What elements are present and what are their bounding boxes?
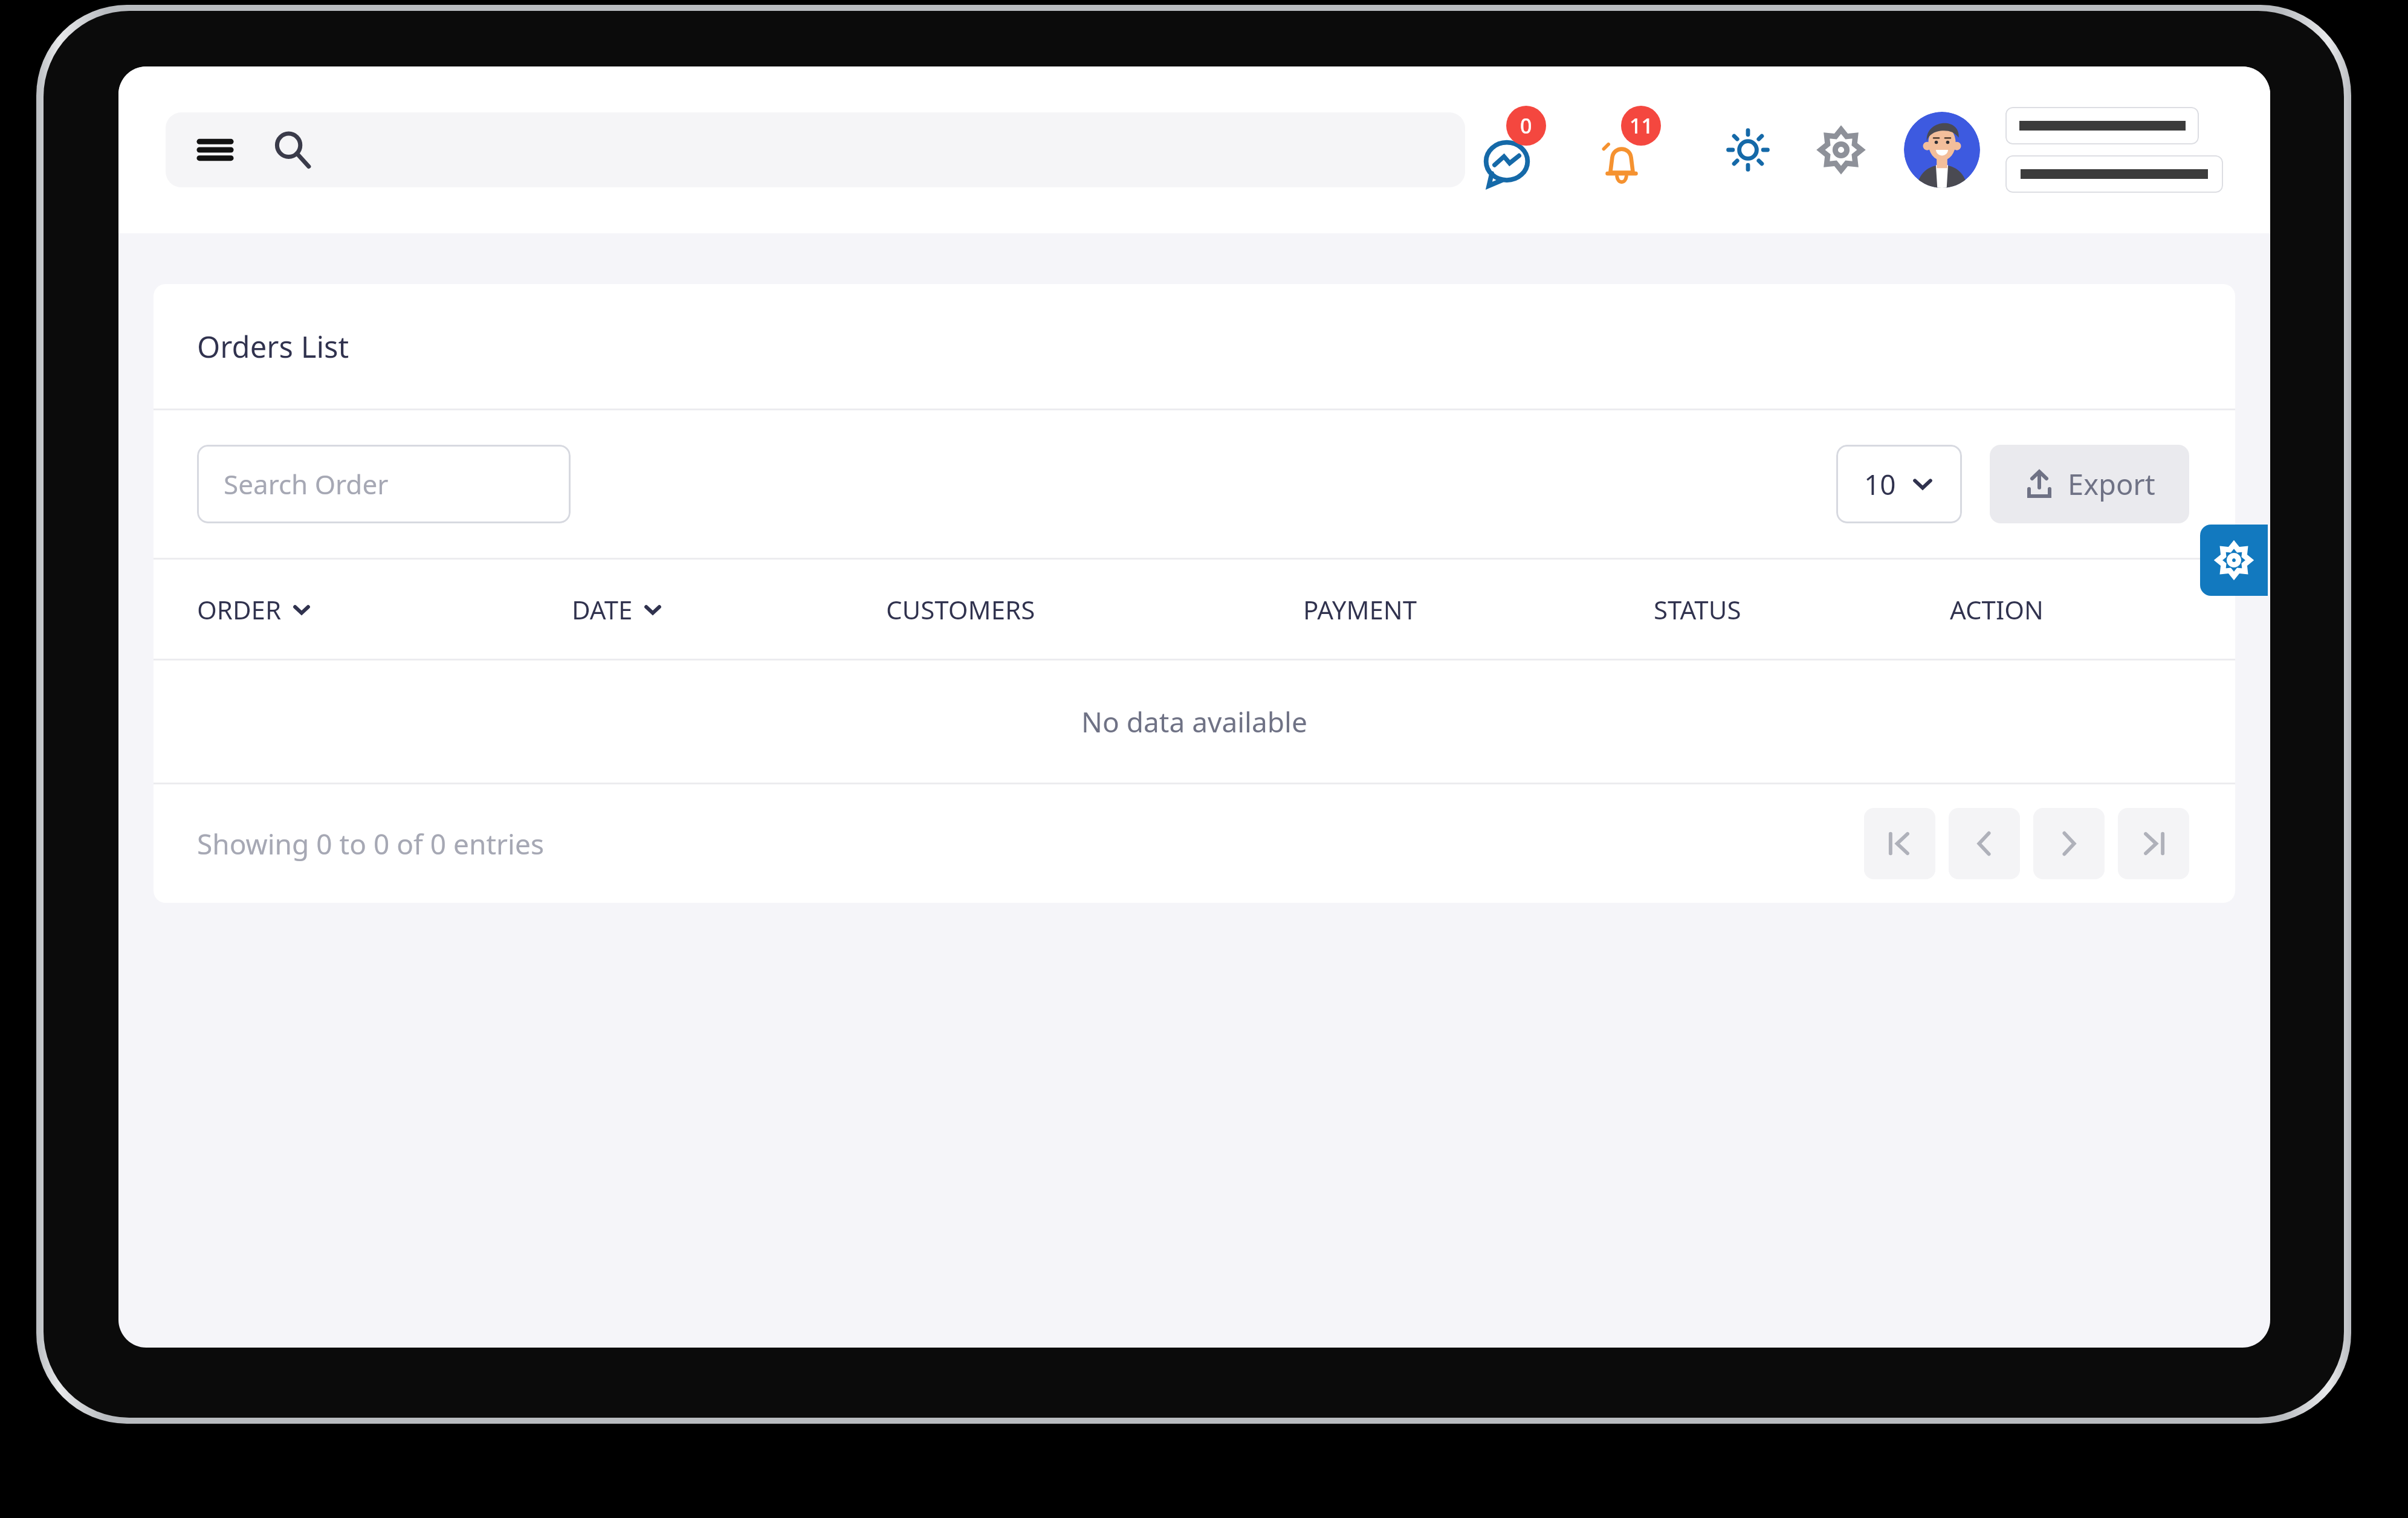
button[interactable]: Search Order — [197, 445, 571, 523]
staticText: DATE — [572, 592, 633, 627]
button[interactable]: Last page — [2118, 808, 2189, 879]
button[interactable]: 10 — [1836, 445, 1962, 523]
staticText: 11 — [1630, 112, 1653, 140]
staticText: ACTION — [1950, 592, 2044, 627]
staticText: 10 — [1864, 465, 1896, 503]
staticText: PAYMENT — [1303, 592, 1417, 627]
staticText: Export — [2068, 465, 2155, 503]
staticText: 0 — [1520, 112, 1532, 140]
staticText: CUSTOMERS — [886, 592, 1035, 627]
button[interactable]: Account info — [2005, 155, 2223, 193]
button[interactable]: Customize — [2200, 525, 2268, 596]
button[interactable]: Previous page — [1949, 808, 2020, 879]
staticText: Search Order — [224, 466, 389, 502]
button[interactable]: Profile — [1904, 112, 1980, 188]
staticText: Showing 0 to 0 of 0 entries — [197, 825, 544, 863]
button[interactable]: Menu — [166, 112, 1465, 187]
staticText: No data available — [1081, 703, 1307, 741]
button[interactable]: Brightness — [1714, 116, 1782, 184]
staticText: Orders List — [197, 326, 349, 367]
button[interactable]: Settings — [1807, 116, 1875, 184]
button[interactable]: Notifications — [1594, 105, 1679, 195]
staticText: STATUS — [1654, 592, 1741, 627]
button[interactable]: Menu — [193, 128, 237, 172]
button[interactable]: First page — [1864, 808, 1935, 879]
button[interactable]: Search — [271, 128, 314, 172]
button[interactable]: Next page — [2033, 808, 2105, 879]
button[interactable]: Account info — [2005, 107, 2199, 144]
button[interactable]: Messages — [1480, 105, 1564, 195]
button[interactable]: Export — [1990, 445, 2189, 523]
staticText: ORDER — [197, 592, 282, 627]
